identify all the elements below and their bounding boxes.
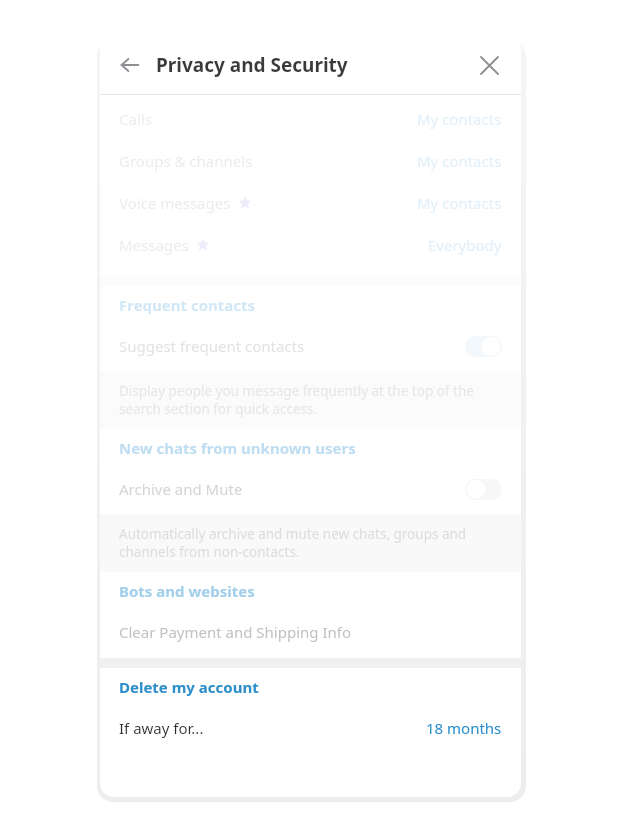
staticText: Groups & channels bbox=[119, 151, 253, 171]
staticText: Messages bbox=[119, 235, 189, 255]
staticText: My contacts bbox=[417, 151, 502, 171]
staticText: Everybody bbox=[428, 235, 502, 255]
button[interactable]: If away for... bbox=[100, 706, 521, 750]
staticText: New chats from unknown users bbox=[119, 438, 356, 458]
button[interactable]: Clear Payment and Shipping Info bbox=[100, 610, 521, 654]
button[interactable]: Suggest frequent contacts bbox=[100, 324, 521, 368]
staticText: Bots and websites bbox=[119, 581, 255, 601]
staticText: Suggest frequent contacts bbox=[119, 336, 305, 356]
staticText: Frequent contacts bbox=[119, 295, 256, 315]
button[interactable]: Groups & channels bbox=[100, 140, 521, 182]
staticText: Automatically archive and mute new chats… bbox=[119, 525, 467, 543]
staticText: search section for quick access. bbox=[119, 400, 318, 418]
staticText: My contacts bbox=[417, 109, 502, 129]
staticText: 18 months bbox=[426, 718, 502, 738]
button[interactable]: Close bbox=[469, 45, 509, 85]
button[interactable]: Voice messages bbox=[100, 182, 521, 224]
staticText: My contacts bbox=[417, 193, 502, 213]
staticText: Calls bbox=[119, 109, 152, 129]
staticText: Clear Payment and Shipping Info bbox=[119, 622, 352, 642]
button[interactable]: Archive and Mute bbox=[100, 467, 521, 511]
staticText: Privacy and Security bbox=[156, 52, 348, 78]
staticText: Archive and Mute bbox=[119, 479, 243, 499]
button[interactable]: Messages bbox=[100, 224, 521, 266]
staticText: Delete my account bbox=[119, 677, 259, 697]
button[interactable]: Calls bbox=[100, 98, 521, 140]
staticText: channels from non-contacts. bbox=[119, 543, 300, 561]
button[interactable]: Back bbox=[110, 45, 150, 85]
staticText: Display people you message frequently at… bbox=[119, 382, 474, 400]
staticText: Voice messages bbox=[119, 193, 231, 213]
staticText: If away for... bbox=[119, 718, 204, 738]
